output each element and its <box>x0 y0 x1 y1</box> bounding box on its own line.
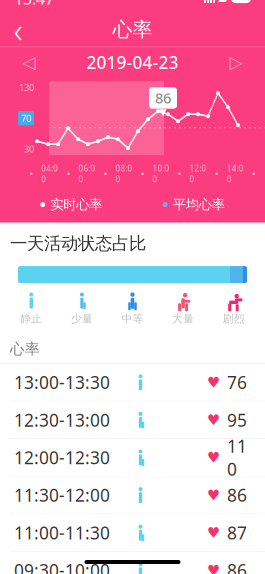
staticText: 11:00-11:30 <box>14 521 110 544</box>
button[interactable]: 11:00-11:30 <box>0 514 265 552</box>
staticText: 少量 <box>71 312 93 325</box>
button[interactable]: 13:00-13:30 <box>0 364 265 401</box>
staticText: 一天活动状态占比 <box>10 233 146 254</box>
staticText: 30 <box>24 143 34 155</box>
button[interactable]: 11:30-12:00 <box>0 477 265 514</box>
staticText: ♥ <box>207 449 220 466</box>
staticText: 08:00 <box>115 163 132 184</box>
staticText: ◁ <box>22 52 35 72</box>
button[interactable]: 09:30-10:00 <box>0 552 265 574</box>
staticText: 95 <box>227 408 247 431</box>
staticText: 12:00-12:30 <box>14 446 110 469</box>
staticText: ▰ <box>218 0 228 6</box>
staticText: 70 <box>21 112 31 124</box>
staticText: 76 <box>227 371 247 394</box>
staticText: 剧烈 <box>223 312 245 325</box>
staticText: 13:00-13:30 <box>14 371 110 394</box>
staticText: 心率 <box>10 340 40 358</box>
staticText: ♥ <box>207 524 220 541</box>
button[interactable]: Previous day <box>12 49 46 75</box>
button[interactable]: 12:00-12:30 <box>0 439 265 477</box>
staticText: 87 <box>227 521 247 544</box>
staticText: 12:30-13:00 <box>14 408 110 431</box>
button[interactable]: Next day <box>219 49 253 75</box>
staticText: ♥ <box>207 374 220 391</box>
staticText: 06:00 <box>78 163 95 184</box>
staticText: 13:47 <box>14 0 54 9</box>
staticText: 实时心率 <box>50 196 102 213</box>
staticText: ‹ <box>13 7 22 53</box>
staticText: 2019-04-23 <box>86 51 178 74</box>
staticText: 86 <box>227 484 247 507</box>
button[interactable]: Back <box>0 13 36 47</box>
staticText: 心率 <box>112 17 152 42</box>
staticText: 12:00 <box>190 163 207 184</box>
staticText: 11:30-12:00 <box>14 484 110 507</box>
staticText: ♥ <box>207 487 220 503</box>
staticText: ▼ <box>159 107 166 117</box>
staticText: 09:30-10:00 <box>14 559 110 574</box>
staticText: 中等 <box>121 312 143 325</box>
staticText: ▷ <box>229 52 242 72</box>
staticText: ♥ <box>207 562 220 574</box>
staticText: 110 <box>227 434 247 480</box>
staticText: ♥ <box>207 412 220 428</box>
staticText: 130 <box>19 81 34 94</box>
staticText: 86 <box>155 88 171 108</box>
staticText: 10:00 <box>152 163 169 184</box>
staticText: 静止 <box>20 312 42 325</box>
staticText: 大量 <box>172 312 194 325</box>
staticText: 04:00 <box>41 163 58 184</box>
staticText: 平均心率 <box>173 196 225 213</box>
button[interactable]: 12:30-13:00 <box>0 401 265 439</box>
staticText: 86 <box>227 559 247 574</box>
staticText: 14:00 <box>227 163 244 184</box>
